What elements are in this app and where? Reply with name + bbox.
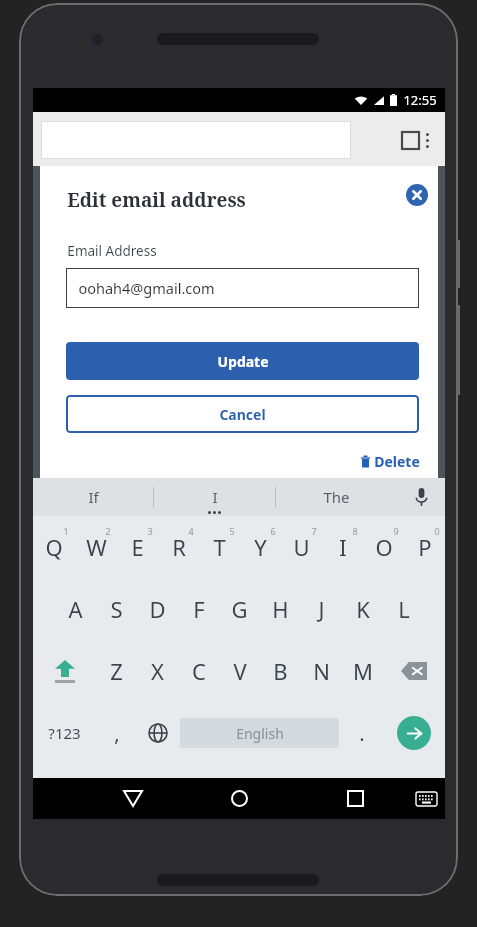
staticText: T	[213, 532, 226, 562]
button[interactable]: Search field	[41, 121, 351, 159]
staticText: M	[353, 656, 373, 686]
button[interactable]: R	[158, 516, 199, 578]
staticText: V	[233, 656, 247, 686]
button[interactable]: P	[404, 516, 445, 578]
button[interactable]: Update	[66, 342, 419, 380]
button[interactable]: W	[75, 516, 117, 578]
staticText: ,	[114, 720, 120, 747]
staticText: 2	[105, 525, 111, 537]
staticText: .	[359, 720, 365, 747]
button[interactable]: E	[117, 516, 158, 578]
button[interactable]: M	[342, 640, 383, 702]
staticText: U	[293, 532, 310, 562]
staticText: G	[231, 594, 248, 624]
button[interactable]: English	[180, 718, 339, 748]
staticText: Delete	[374, 452, 420, 471]
staticText: Update	[217, 352, 269, 371]
staticText: R	[172, 532, 186, 562]
button[interactable]: .	[341, 702, 382, 764]
button[interactable]: Close	[404, 182, 430, 208]
staticText: O	[375, 532, 393, 562]
button[interactable]: ?123	[33, 702, 96, 764]
staticText: E	[131, 532, 144, 562]
staticText: C	[192, 656, 206, 686]
button[interactable]: U	[281, 516, 322, 578]
staticText: oohah4@gmail.com	[78, 278, 215, 298]
staticText: I	[212, 487, 218, 507]
staticText: 0	[434, 525, 440, 537]
button[interactable]: C	[178, 640, 219, 702]
button[interactable]: V	[219, 640, 260, 702]
staticText: English	[236, 724, 284, 743]
button[interactable]: S	[96, 578, 137, 640]
button[interactable]: Change language	[137, 702, 178, 764]
staticText: 7	[311, 525, 317, 537]
staticText: D	[149, 594, 166, 624]
button[interactable]: F	[178, 578, 219, 640]
staticText: If	[88, 487, 99, 507]
staticText: J	[318, 594, 325, 624]
button[interactable]: B	[260, 640, 301, 702]
button[interactable]: Shift	[33, 640, 96, 702]
staticText: K	[356, 594, 370, 624]
staticText: The	[323, 487, 350, 507]
staticText: B	[273, 656, 288, 686]
button[interactable]: N	[301, 640, 342, 702]
staticText: Q	[45, 532, 63, 562]
staticText: W	[86, 532, 107, 562]
button[interactable]: Backspace	[383, 640, 445, 702]
button[interactable]: Delete	[340, 452, 420, 471]
staticText: N	[313, 656, 330, 686]
button[interactable]: X	[137, 640, 178, 702]
button[interactable]: Keyboard	[401, 778, 451, 819]
staticText: X	[151, 656, 164, 686]
button[interactable]: oohah4@gmail.com	[66, 268, 419, 308]
button[interactable]: K	[342, 578, 383, 640]
button[interactable]: Tabs	[388, 121, 432, 159]
staticText: 8	[352, 525, 358, 537]
staticText: Edit email address	[67, 187, 246, 213]
button[interactable]: Back	[103, 778, 163, 819]
staticText: 6	[270, 525, 276, 537]
staticText: Email Address	[67, 242, 157, 260]
staticText: 1	[63, 525, 69, 537]
button[interactable]: The	[276, 478, 397, 516]
button[interactable]: Enter	[382, 702, 445, 764]
button[interactable]: Voice input	[397, 478, 445, 516]
staticText: 9	[393, 525, 399, 537]
staticText: H	[272, 594, 289, 624]
button[interactable]: G	[219, 578, 260, 640]
staticText: Y	[254, 532, 267, 562]
staticText: I	[339, 532, 347, 562]
staticText: ?123	[48, 723, 81, 743]
button[interactable]: Z	[96, 640, 137, 702]
button[interactable]: D	[137, 578, 178, 640]
staticText: Z	[110, 656, 123, 686]
button[interactable]: I	[154, 478, 275, 516]
button[interactable]: Recent apps	[325, 778, 385, 819]
staticText: S	[110, 594, 123, 624]
staticText: 5	[229, 525, 235, 537]
button[interactable]: O	[363, 516, 404, 578]
staticText: L	[398, 594, 410, 624]
button[interactable]: Y	[240, 516, 281, 578]
staticText: A	[68, 594, 83, 624]
button[interactable]: T	[199, 516, 240, 578]
button[interactable]: ,	[96, 702, 137, 764]
button[interactable]: More options	[410, 121, 445, 159]
button[interactable]: J	[301, 578, 342, 640]
button[interactable]: L	[383, 578, 424, 640]
staticText: 3	[147, 525, 153, 537]
staticText: 4	[188, 525, 194, 537]
button[interactable]: Home	[209, 778, 269, 819]
staticText: F	[193, 594, 205, 624]
button[interactable]: H	[260, 578, 301, 640]
button[interactable]: I	[322, 516, 363, 578]
staticText: P	[418, 532, 432, 562]
staticText: Cancel	[219, 405, 266, 424]
button[interactable]: Cancel	[66, 395, 419, 433]
button[interactable]: If	[33, 478, 153, 516]
staticText: 12:55	[403, 91, 437, 109]
button[interactable]: A	[55, 578, 96, 640]
button[interactable]: Q	[33, 516, 75, 578]
